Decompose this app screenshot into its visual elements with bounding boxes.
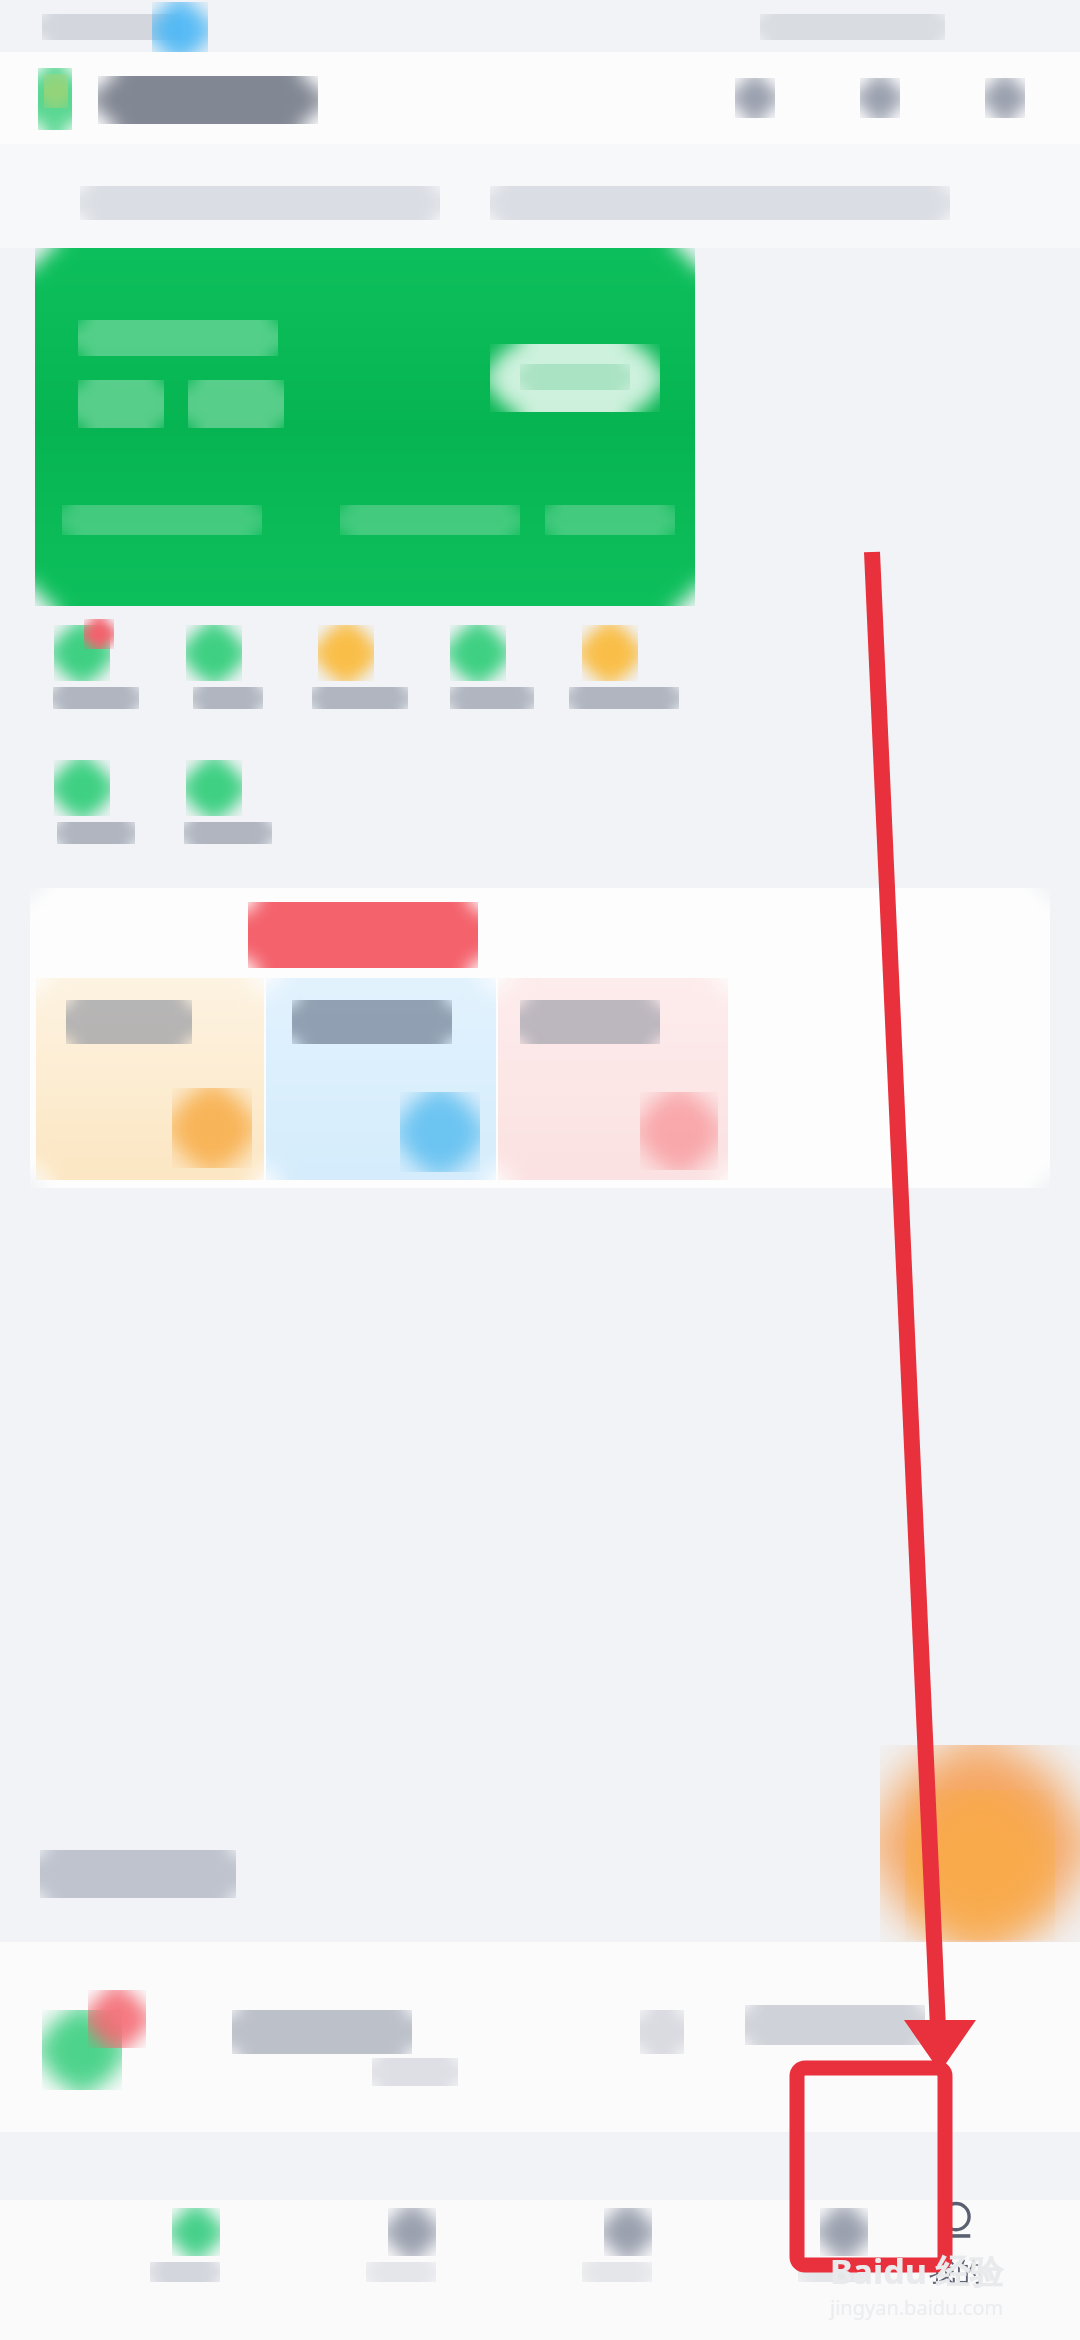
button[interactable]: [266, 978, 496, 1180]
button[interactable]: Scan: [719, 62, 791, 134]
staticText: Baidu 经验: [830, 2248, 1004, 2294]
button[interactable]: 首页: [20, 2200, 220, 2305]
button[interactable]: [0, 1942, 1080, 2132]
button[interactable]: [36, 760, 156, 855]
button[interactable]: [35, 248, 695, 606]
staticText: 我的: [929, 2255, 983, 2289]
button[interactable]: [564, 625, 684, 720]
button[interactable]: [36, 978, 264, 1180]
button[interactable]: 口碑: [452, 2200, 652, 2305]
button[interactable]: [432, 625, 552, 720]
button[interactable]: [0, 144, 1080, 248]
button[interactable]: 朋友: [668, 2200, 868, 2305]
staticText: jingyan.baidu.com: [830, 2294, 1004, 2321]
button[interactable]: 我的: [866, 2185, 1046, 2335]
button[interactable]: [168, 625, 288, 720]
button[interactable]: More: [969, 62, 1041, 134]
button[interactable]: [300, 625, 420, 720]
button[interactable]: Message: [844, 62, 916, 134]
button[interactable]: [498, 978, 728, 1180]
button[interactable]: [168, 760, 288, 855]
button[interactable]: [36, 625, 156, 720]
button[interactable]: [490, 344, 660, 412]
button[interactable]: 理财: [236, 2200, 436, 2305]
